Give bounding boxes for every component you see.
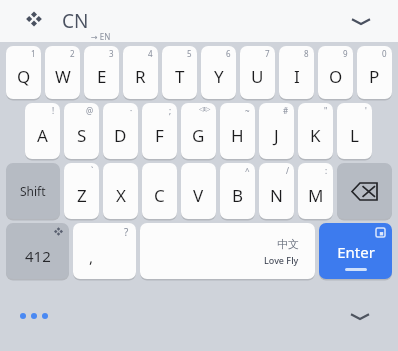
staticText: 4 [148, 48, 153, 59]
staticText: X [116, 184, 126, 207]
staticText: " [324, 105, 328, 116]
staticText: 412 [25, 246, 51, 266]
staticText: 7 [265, 48, 270, 59]
button[interactable]: More options [20, 313, 48, 319]
staticText: 2 [70, 48, 75, 59]
button[interactable]: ^ [220, 163, 255, 219]
staticText: K [310, 124, 321, 147]
button[interactable]: @ [64, 103, 99, 159]
staticText: # [283, 105, 289, 116]
staticText: M [308, 184, 324, 207]
button[interactable]: ! [25, 103, 60, 159]
button[interactable]: 4 [123, 46, 158, 99]
staticText: B [232, 184, 244, 207]
button[interactable]: 9 [318, 46, 353, 99]
staticText: 6 [226, 48, 231, 59]
staticText: S [77, 124, 87, 147]
button[interactable]: X [103, 163, 138, 219]
button[interactable]: 8 [279, 46, 314, 99]
staticText: E [97, 65, 107, 88]
staticText: Z [77, 184, 87, 207]
button[interactable]: : [298, 163, 333, 219]
staticText: J [274, 124, 279, 147]
button[interactable]: Collapse keyboard [350, 14, 372, 28]
button[interactable]: V [181, 163, 216, 219]
staticText: : [325, 165, 328, 176]
staticText: ~ [245, 105, 250, 116]
staticText: ◁I▷ [199, 105, 211, 113]
staticText: → EN [91, 31, 111, 42]
button[interactable]: ' [337, 103, 372, 159]
staticText: T [175, 65, 185, 88]
button[interactable]: 5 [162, 46, 197, 99]
staticText: Shift [20, 183, 46, 199]
staticText: @ [86, 105, 94, 116]
staticText: D [114, 124, 127, 147]
staticText: CN [62, 8, 89, 34]
button[interactable]: 0 [357, 46, 392, 99]
staticText: / [286, 165, 289, 176]
staticText: F [155, 124, 164, 147]
staticText: ; [169, 105, 172, 116]
staticText: P [369, 65, 380, 88]
button[interactable]: Shift [6, 163, 60, 219]
button[interactable]: / [259, 163, 294, 219]
staticText: N [270, 184, 283, 207]
staticText: Q [17, 65, 31, 88]
staticText: Love Fly [264, 254, 299, 266]
staticText: · [130, 105, 133, 116]
staticText: Y [214, 65, 224, 88]
staticText: G [192, 124, 205, 147]
staticText: W [55, 65, 71, 88]
staticText: R [135, 65, 146, 88]
button[interactable]: Space [140, 223, 315, 279]
staticText: L [350, 124, 359, 147]
button[interactable]: 7 [240, 46, 275, 99]
button[interactable]: ◁I▷ [181, 103, 216, 159]
button[interactable]: ; [142, 103, 177, 159]
button[interactable]: 3 [84, 46, 119, 99]
staticText: 0 [382, 48, 387, 59]
staticText: H [231, 124, 244, 147]
button[interactable]: Symbols [6, 223, 69, 279]
button[interactable]: Backspace [337, 163, 392, 219]
button[interactable]: Hide keyboard [348, 308, 372, 324]
staticText: U [251, 65, 264, 88]
staticText: 9 [343, 48, 348, 59]
staticText: C [154, 184, 165, 207]
staticText: ? [124, 225, 129, 239]
staticText: ` [91, 165, 94, 176]
staticText: O [329, 65, 343, 88]
staticText: ^ [245, 165, 250, 176]
button[interactable]: 1 [6, 46, 41, 99]
staticText: 1 [31, 48, 36, 59]
staticText: V [193, 184, 204, 207]
button[interactable]: 6 [201, 46, 236, 99]
staticText: ' [365, 105, 367, 116]
button[interactable]: C [142, 163, 177, 219]
button[interactable]: " [298, 103, 333, 159]
staticText: 3 [109, 48, 114, 59]
button[interactable]: ~ [220, 103, 255, 159]
staticText: Enter [337, 242, 375, 262]
staticText: , [89, 247, 94, 267]
staticText: 中文 [277, 237, 299, 251]
staticText: I [294, 65, 300, 88]
staticText: A [37, 124, 48, 147]
button[interactable]: 2 [45, 46, 80, 99]
button[interactable]: # [259, 103, 294, 159]
button[interactable]: ? [73, 223, 136, 279]
staticText: 8 [304, 48, 309, 59]
staticText: 5 [187, 48, 192, 59]
button[interactable]: Enter [319, 223, 392, 279]
staticText: ! [52, 105, 55, 116]
button[interactable]: ` [64, 163, 99, 219]
button[interactable]: · [103, 103, 138, 159]
